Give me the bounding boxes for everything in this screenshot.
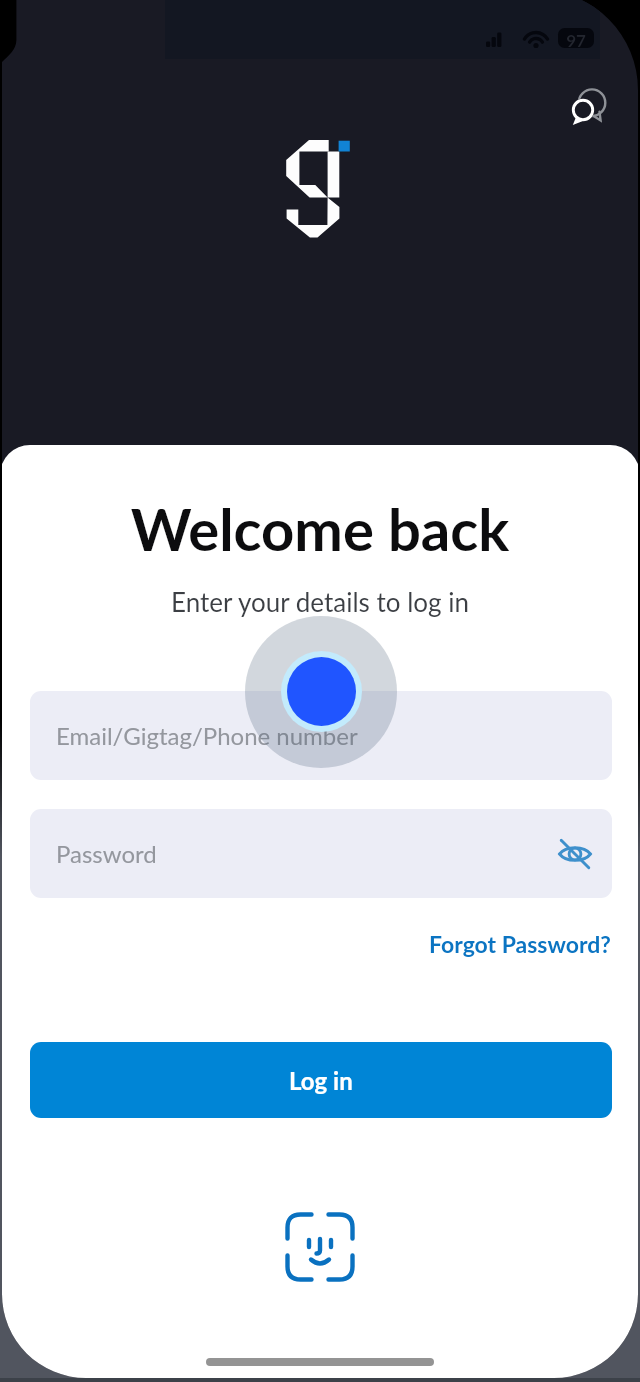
button[interactable]: Email/Gigtag/Phone number [30,691,612,780]
button[interactable]: Log in [30,1042,612,1118]
staticText: Welcome back [0,494,640,564]
button[interactable]: Log in with Face ID [278,1205,362,1289]
staticText: Forgot Password? [429,930,611,958]
staticText: 97 [566,30,586,50]
staticText: Password [56,839,157,868]
button[interactable]: Forgot Password? [418,922,622,966]
staticText: Enter your details to log in [0,586,640,617]
button[interactable]: Show password [548,827,602,881]
button[interactable]: Password [30,809,612,898]
staticText: Email/Gigtag/Phone number [56,721,358,750]
button[interactable]: Support chat [561,78,617,134]
staticText: Log in [289,1066,353,1095]
